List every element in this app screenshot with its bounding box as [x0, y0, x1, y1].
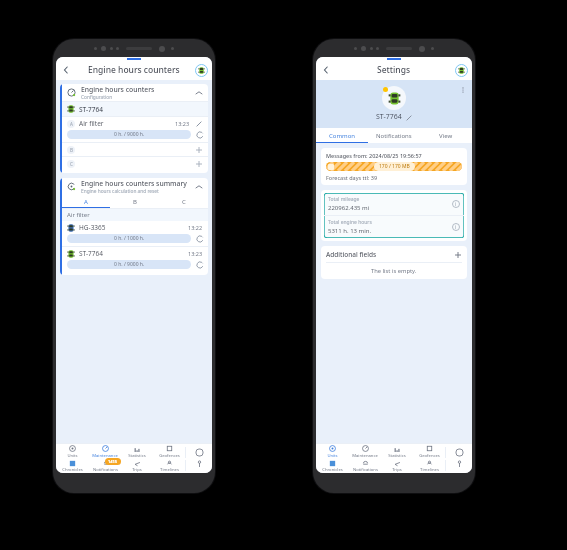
button[interactable]: Timelines: [413, 460, 445, 473]
button[interactable]: ST-7764: [67, 247, 203, 260]
button[interactable]: A: [62, 195, 110, 208]
staticText: Common: [329, 132, 355, 140]
staticText: 0 h. / 9000 h.: [114, 261, 145, 268]
staticText: A: [70, 121, 73, 127]
staticText: B: [70, 147, 73, 153]
staticText: Total engine hours: [328, 219, 372, 226]
staticText: 170 / 170 MB: [379, 163, 410, 170]
staticText: Engine hours counters: [88, 64, 180, 76]
button[interactable]: Messages: [186, 444, 212, 460]
button[interactable]: Back: [60, 64, 72, 76]
button[interactable]: Messages: [446, 444, 472, 460]
other: Add: [194, 145, 203, 154]
button[interactable]: Engine hours counters summary: [67, 178, 203, 195]
button[interactable]: Units: [56, 444, 89, 460]
staticText: ST-7764: [376, 112, 402, 122]
staticText: Trips: [132, 467, 142, 473]
button[interactable]: B: [110, 195, 159, 208]
staticText: 220962.435 mi: [328, 204, 370, 212]
button[interactable]: Edit: [195, 120, 203, 128]
button[interactable]: Notifications: [349, 460, 381, 473]
staticText: Notifications: [93, 467, 118, 473]
staticText: Timelines: [420, 467, 439, 473]
staticText: C: [70, 161, 73, 167]
staticText: The list is empty.: [371, 267, 417, 275]
staticText: Maintenance: [352, 453, 378, 459]
button[interactable]: Notifications: [368, 128, 420, 143]
button[interactable]: Common: [316, 128, 368, 143]
button[interactable]: C: [67, 157, 203, 170]
button[interactable]: 1415: [89, 460, 121, 473]
button[interactable]: Reset counter: [195, 130, 204, 139]
button[interactable]: Reset counter: [195, 234, 204, 243]
staticText: 5311 h. 13 min.: [328, 227, 372, 235]
staticText: C: [182, 198, 186, 206]
other: Add field: [453, 250, 462, 259]
button[interactable]: Total mileage: [328, 196, 460, 212]
button[interactable]: Rename: [405, 114, 412, 121]
staticText: View: [439, 132, 453, 140]
staticText: Engine hours calculation and reset: [81, 188, 159, 195]
staticText: Chronicles: [322, 467, 343, 473]
button[interactable]: Timelines: [153, 460, 185, 473]
button[interactable]: Statistics: [121, 444, 153, 460]
other: Add: [194, 159, 203, 168]
staticText: Notifications: [353, 467, 378, 473]
staticText: Trips: [392, 467, 402, 473]
button[interactable]: More options: [458, 85, 467, 94]
staticText: Additional fields: [326, 250, 453, 259]
button[interactable]: Engine hours counters: [67, 84, 203, 101]
other: Collapse: [194, 182, 203, 191]
staticText: Geofences: [419, 453, 440, 459]
button[interactable]: Total engine hours: [328, 219, 460, 235]
button[interactable]: HG-3365: [67, 221, 203, 234]
staticText: HG-3365: [79, 223, 188, 232]
button[interactable]: Location: [186, 460, 212, 473]
staticText: Statistics: [128, 453, 146, 459]
staticText: 0 h. / 9000 h.: [114, 131, 145, 138]
button[interactable]: Trips: [381, 460, 413, 473]
button[interactable]: Maintenance: [349, 444, 381, 460]
button[interactable]: A: [67, 117, 203, 130]
staticText: 0 h. / 1000 h.: [114, 235, 145, 242]
staticText: Timelines: [160, 467, 179, 473]
button[interactable]: C: [159, 195, 208, 208]
staticText: Units: [327, 453, 338, 459]
staticText: B: [133, 198, 137, 206]
staticText: Total mileage: [328, 196, 360, 203]
staticText: Air filter: [79, 119, 175, 128]
button[interactable]: Chronicles: [56, 460, 89, 473]
staticText: Engine hours counters summary: [81, 179, 187, 188]
staticText: i: [455, 201, 457, 207]
button[interactable]: Geofences: [413, 444, 445, 460]
staticText: 13:23: [175, 120, 190, 127]
button[interactable]: Additional fields: [326, 246, 462, 262]
staticText: ST-7764: [79, 249, 188, 258]
staticText: ST-7764: [79, 105, 103, 114]
button[interactable]: Trips: [121, 460, 153, 473]
button[interactable]: Back: [320, 64, 332, 76]
staticText: Units: [67, 453, 78, 459]
button[interactable]: Maintenance: [89, 444, 121, 460]
staticText: Messages from: 2024/08/25 19:56:57: [326, 152, 422, 159]
staticText: 13:22: [188, 224, 203, 231]
staticText: Notifications: [376, 132, 412, 140]
button[interactable]: Vehicle: [455, 64, 468, 77]
staticText: 1415: [108, 459, 118, 464]
other: Collapse: [194, 88, 203, 97]
staticText: Chronicles: [62, 467, 83, 473]
button[interactable]: Reset counter: [195, 260, 204, 269]
button[interactable]: View: [420, 128, 472, 143]
button[interactable]: Geofences: [153, 444, 185, 460]
button[interactable]: Statistics: [381, 444, 413, 460]
button[interactable]: B: [67, 143, 203, 156]
staticText: Forecast days ttl: 39: [326, 174, 378, 181]
button[interactable]: Location: [446, 460, 472, 473]
staticText: Geofences: [159, 453, 180, 459]
button[interactable]: ST-7764: [67, 102, 203, 116]
button[interactable]: Vehicle: [195, 64, 208, 77]
staticText: i: [455, 224, 457, 230]
button[interactable]: Units: [316, 444, 349, 460]
staticText: A: [84, 198, 88, 206]
button[interactable]: Chronicles: [316, 460, 349, 473]
